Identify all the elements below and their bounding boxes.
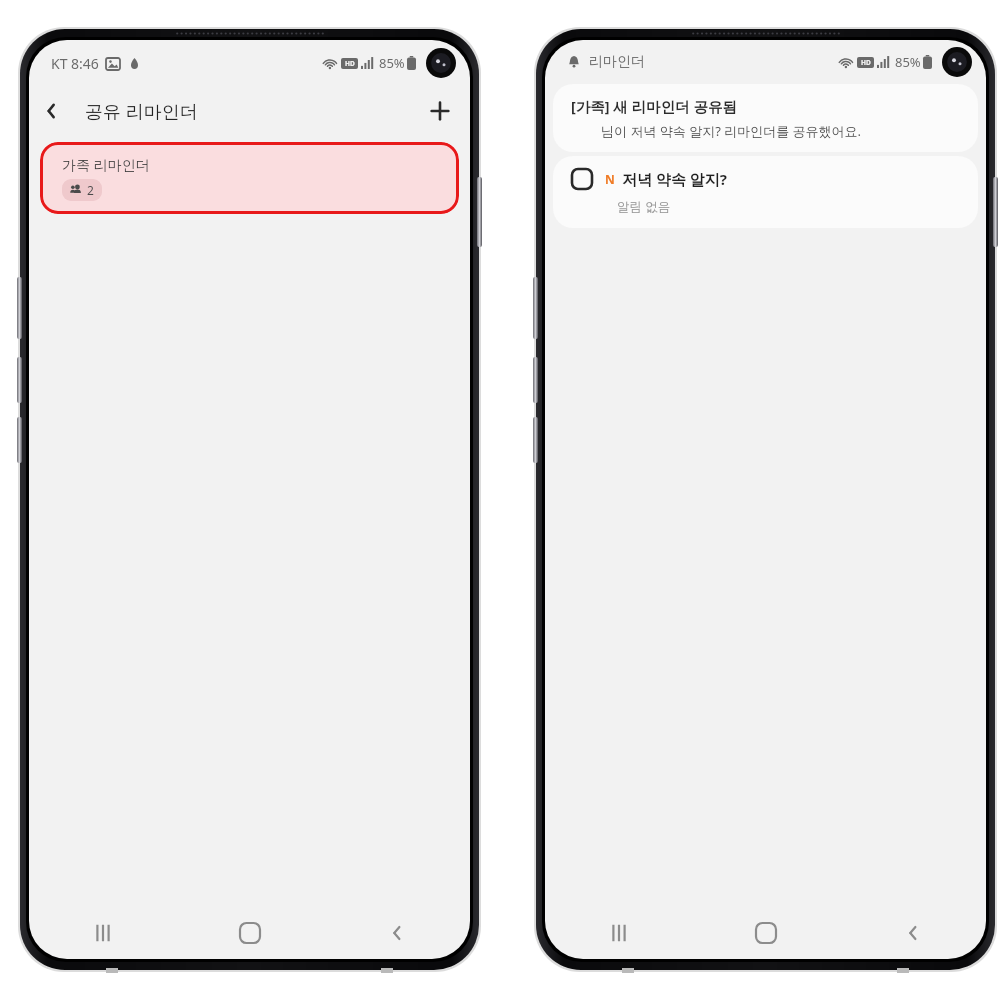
button[interactable]: 가족 리마인더 (40, 142, 459, 214)
staticText: HD (345, 59, 355, 68)
button[interactable]: Recents (29, 907, 176, 959)
staticText: [가족] 새 리마인더 공유됨 (571, 96, 737, 116)
staticText: 85% (895, 53, 921, 71)
staticText: 알림 없음 (617, 198, 671, 215)
staticText: KT 8:46 (51, 54, 99, 73)
button[interactable]: Back (323, 907, 470, 959)
staticText: 2 (87, 182, 94, 198)
button[interactable]: [가족] 새 리마인더 공유됨 (553, 84, 978, 152)
staticText: 가족 리마인더 (62, 155, 150, 174)
button[interactable]: Back (839, 907, 986, 959)
button[interactable]: Complete (571, 168, 593, 190)
staticText: HD (861, 58, 871, 67)
staticText: 리마인더 (589, 53, 645, 71)
button[interactable]: Recents (545, 907, 692, 959)
staticText: N (605, 171, 615, 187)
staticText: 85% (379, 54, 405, 72)
button[interactable]: Home (176, 907, 323, 959)
button[interactable]: Home (692, 907, 839, 959)
button[interactable]: Complete (553, 156, 978, 228)
button[interactable]: Add (418, 89, 462, 133)
staticText: 님이 저녁 약속 알지? 리마인더를 공유했어요. (601, 122, 862, 140)
staticText: 공유 리마인더 (85, 99, 198, 124)
staticText: 저녁 약속 알지? (622, 169, 727, 189)
button[interactable]: Back (29, 89, 73, 133)
